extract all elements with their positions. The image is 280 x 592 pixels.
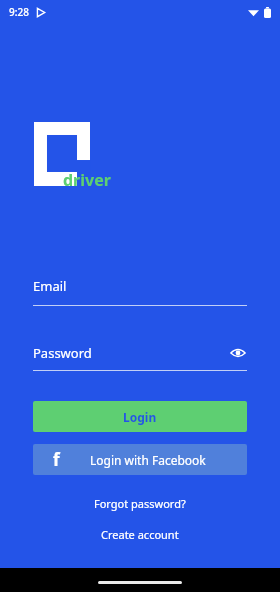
staticText: f: [53, 448, 60, 471]
staticText: Login: [123, 409, 157, 425]
staticText: 9:28: [9, 5, 29, 19]
button[interactable]: Login: [33, 401, 247, 432]
staticText: Create account: [101, 527, 179, 542]
staticText: Forgot password?: [94, 496, 186, 511]
staticText: Password: [33, 344, 92, 362]
button[interactable]: f: [33, 444, 247, 475]
button[interactable]: Show password: [229, 344, 247, 362]
staticText: Email: [33, 277, 67, 295]
button[interactable]: Email: [33, 277, 247, 306]
button[interactable]: Forgot password?: [0, 496, 280, 511]
staticText: Login with Facebook: [90, 452, 206, 468]
button[interactable]: Create account: [0, 527, 280, 542]
button[interactable]: Password: [33, 344, 247, 371]
staticText: driver: [63, 169, 111, 191]
